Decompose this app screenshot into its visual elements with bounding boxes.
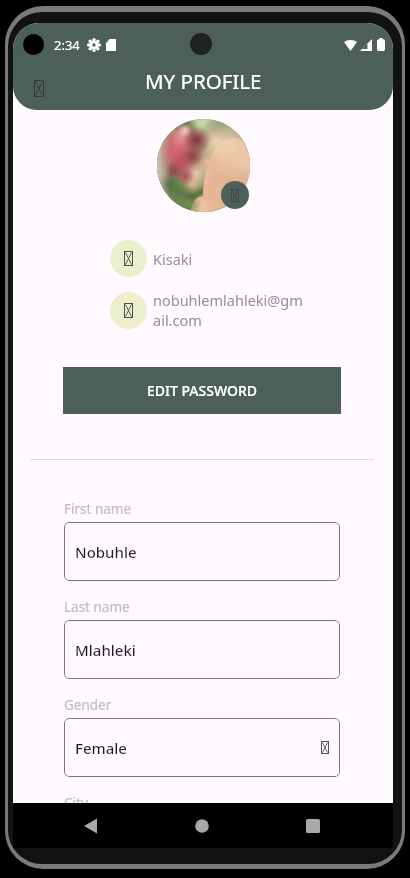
button[interactable]: Back <box>74 809 108 843</box>
button[interactable]: Mlahleki <box>64 620 340 679</box>
button[interactable]: Change photo <box>221 181 249 209</box>
button[interactable]: Home <box>185 809 219 843</box>
staticText: Mlahleki <box>75 640 136 660</box>
staticText: City <box>64 794 393 812</box>
staticText: Gender <box>64 696 112 714</box>
button[interactable]: Nobuhle <box>64 522 340 581</box>
button[interactable]: EDIT PASSWORD <box>63 367 341 414</box>
staticText: First name <box>64 500 132 518</box>
staticText: EDIT PASSWORD <box>147 381 257 400</box>
staticText: nobuhlemlahleki@gmail.com <box>153 290 305 330</box>
staticText: Female <box>75 738 127 758</box>
staticText: MY PROFILE <box>145 67 262 95</box>
staticText: Kisaki <box>153 249 193 269</box>
staticText: Last name <box>64 598 130 616</box>
button[interactable]: Back <box>27 76 51 100</box>
button[interactable]: Female <box>64 718 340 777</box>
staticText: Nobuhle <box>75 542 137 562</box>
button[interactable]: Recents <box>296 809 330 843</box>
staticText: 2:34 <box>54 36 80 54</box>
